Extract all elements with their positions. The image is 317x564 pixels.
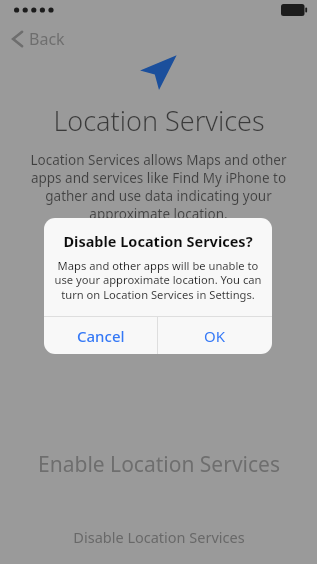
button[interactable]: OK [158, 317, 272, 354]
button[interactable]: Disable Location Services [0, 524, 317, 550]
staticText: Back [29, 28, 65, 50]
other: Location [138, 52, 180, 92]
staticText: Disable Location Services [73, 527, 245, 547]
staticText: Cancel [77, 326, 125, 346]
button[interactable]: Back [6, 24, 71, 54]
staticText: Disable Location Services? [63, 231, 253, 251]
staticText: OK [204, 326, 226, 346]
staticText: Maps and other apps will be unable to us… [53, 258, 263, 303]
staticText: Location Services allows Maps and other … [16, 151, 301, 223]
staticText: Location Services [53, 102, 265, 139]
staticText: Enable Location Services [38, 450, 280, 479]
button[interactable]: Enable Location Services [0, 448, 317, 480]
button[interactable]: Cancel [44, 317, 157, 354]
